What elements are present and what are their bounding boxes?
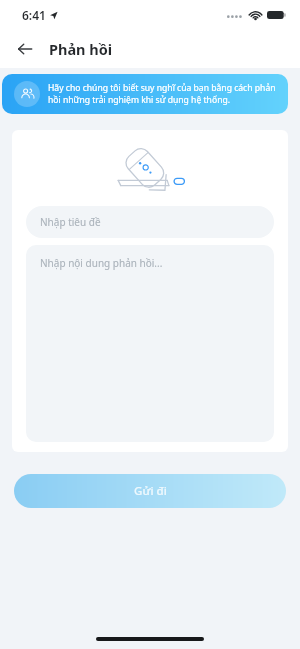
button[interactable]: Back [10,34,40,64]
staticText: 6:41 [22,7,46,23]
staticText: Nhập tiêu đề [40,215,101,229]
staticText: Nhập nội dung phản hồi... [40,256,163,270]
staticText: Phản hồi [49,39,113,59]
button[interactable]: Nhập nội dung phản hồi... [26,245,274,442]
button[interactable]: Hãy cho chúng tôi biết suy nghĩ của bạn … [2,74,288,114]
staticText: Gửi đi [134,483,167,499]
button[interactable]: Gửi đi [14,474,286,508]
staticText: Hãy cho chúng tôi biết suy nghĩ của bạn … [48,82,280,106]
button[interactable]: Nhập tiêu đề [26,206,274,238]
